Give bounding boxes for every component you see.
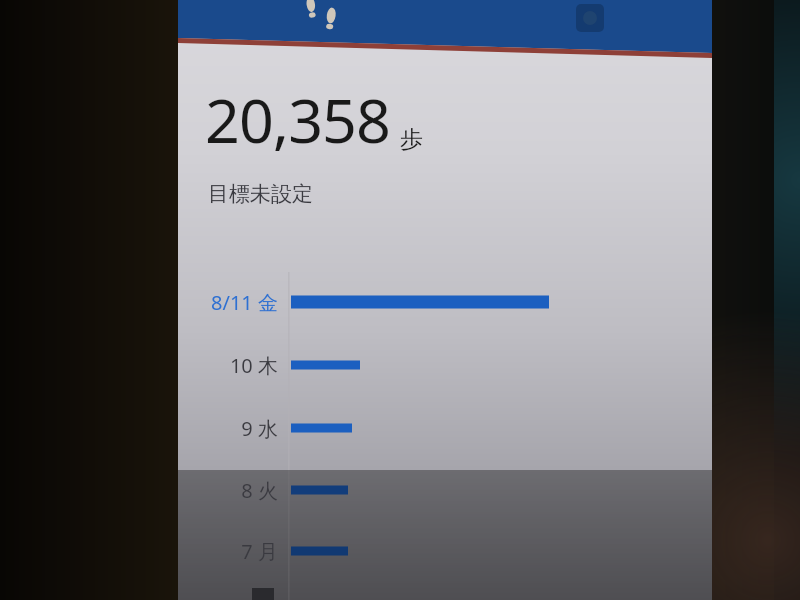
button[interactable]: 7 月 bbox=[178, 536, 278, 566]
button[interactable]: 8/11 金 bbox=[178, 287, 278, 317]
button[interactable]: Weight bbox=[570, 0, 610, 38]
staticText: 7 月 bbox=[241, 538, 278, 565]
staticText: 歩 bbox=[400, 125, 423, 154]
staticText: 8 火 bbox=[241, 477, 278, 504]
staticText: 20,358 bbox=[205, 78, 390, 161]
button[interactable]: 目標未設定 bbox=[208, 181, 313, 207]
staticText: 10 木 bbox=[229, 352, 278, 379]
button[interactable]: 10 木 bbox=[178, 350, 278, 380]
button[interactable]: 20,358 bbox=[205, 78, 423, 161]
staticText: 8/11 金 bbox=[211, 289, 278, 316]
button[interactable]: Steps bbox=[296, 0, 346, 40]
button[interactable]: 8 火 bbox=[178, 475, 278, 505]
button[interactable]: 9 水 bbox=[178, 413, 278, 443]
staticText: 9 水 bbox=[241, 415, 278, 442]
